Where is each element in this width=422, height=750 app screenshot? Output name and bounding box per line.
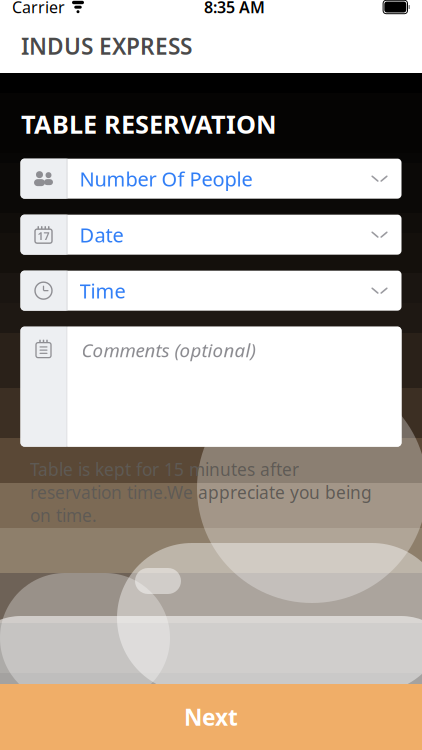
staticText: Next <box>184 702 238 732</box>
button[interactable]: Number Of People <box>20 159 401 199</box>
staticText: TABLE RESERVATION <box>21 107 277 141</box>
staticText: Number Of People <box>79 165 252 192</box>
staticText: 17 <box>37 229 49 243</box>
staticText: Date <box>79 221 123 248</box>
staticText: 8:35 AM <box>204 0 265 18</box>
staticText: INDUS EXPRESS <box>21 31 192 61</box>
staticText: Table is kept for 15 minutes after reser… <box>30 458 372 527</box>
staticText: Carrier <box>12 0 65 18</box>
staticText: Time <box>79 277 125 304</box>
staticText: Comments (optional) <box>81 338 255 362</box>
button[interactable]: Time <box>20 271 401 311</box>
button[interactable]: Comments (optional) <box>20 327 401 447</box>
button[interactable]: Next <box>0 684 422 750</box>
button[interactable]: 17 <box>20 215 401 255</box>
